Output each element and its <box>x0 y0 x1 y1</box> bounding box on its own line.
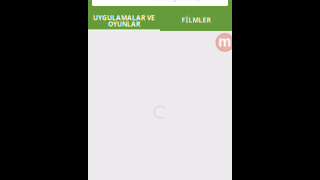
button[interactable]: FİLMLER <box>160 7 232 32</box>
button[interactable]: UYGULAMALAR VE <box>88 6 160 31</box>
staticText: Google Play <box>156 0 201 2</box>
staticText: FİLMLER <box>181 16 210 24</box>
staticText: UYGULAMALAR VE <box>93 13 155 22</box>
staticText: m <box>218 32 231 50</box>
staticText: OYUNLAR <box>108 20 140 28</box>
